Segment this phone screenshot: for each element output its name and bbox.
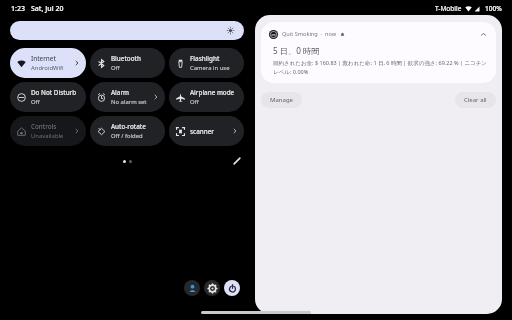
staticText: 1:23: [11, 4, 25, 14]
staticText: 100%: [485, 4, 502, 13]
button[interactable]: Alarm: [90, 82, 165, 112]
button[interactable]: Settings: [204, 280, 220, 296]
staticText: Bluetooth: [111, 54, 141, 63]
button[interactable]: Clear all: [455, 92, 496, 108]
staticText: Quit Smoking · now: [282, 30, 337, 38]
button[interactable]: Edit tiles: [230, 155, 244, 167]
staticText: Auto-rotate: [111, 122, 146, 131]
staticText: Internet: [31, 54, 56, 63]
button[interactable]: Manage: [261, 92, 302, 108]
button[interactable]: User: [184, 280, 200, 296]
button[interactable]: Brightness: [10, 21, 244, 40]
staticText: Alarm: [111, 88, 130, 97]
button[interactable]: Quit Smoking · now: [261, 22, 496, 83]
staticText: Off: [31, 98, 40, 106]
button[interactable]: Flashlight: [169, 48, 244, 78]
staticText: scanner: [190, 127, 214, 136]
staticText: Sat, Jul 20: [31, 4, 64, 14]
button[interactable]: Bluetooth: [90, 48, 165, 78]
staticText: AndroidWifi: [31, 64, 64, 72]
button[interactable]: Power: [224, 280, 240, 296]
staticText: 節約されたお金: $ 160.83 | 救われた命: 1 日, 6 時間 | 欲…: [273, 59, 489, 75]
staticText: T-Mobile: [435, 4, 462, 13]
staticText: Camera in use: [190, 64, 230, 72]
staticText: Off: [111, 64, 120, 72]
staticText: Off: [190, 98, 199, 106]
staticText: Manage: [270, 96, 293, 104]
staticText: Clear all: [464, 96, 487, 104]
staticText: Controls: [31, 122, 57, 131]
staticText: Unavailable: [31, 132, 64, 140]
staticText: 5 日、0 時間: [273, 45, 320, 56]
button[interactable]: Do Not Disturb: [10, 82, 86, 112]
button[interactable]: Airplane mode: [169, 82, 244, 112]
button[interactable]: Auto-rotate: [90, 116, 165, 146]
button[interactable]: Internet: [10, 48, 86, 78]
staticText: Do Not Disturb: [31, 88, 77, 97]
staticText: Flashlight: [190, 54, 220, 63]
button[interactable]: scanner: [169, 116, 244, 146]
staticText: Off / folded: [111, 132, 143, 140]
button[interactable]: Collapse notification: [477, 28, 489, 40]
staticText: Airplane mode: [190, 88, 235, 97]
button[interactable]: Controls: [10, 116, 86, 146]
staticText: No alarm set: [111, 98, 147, 106]
